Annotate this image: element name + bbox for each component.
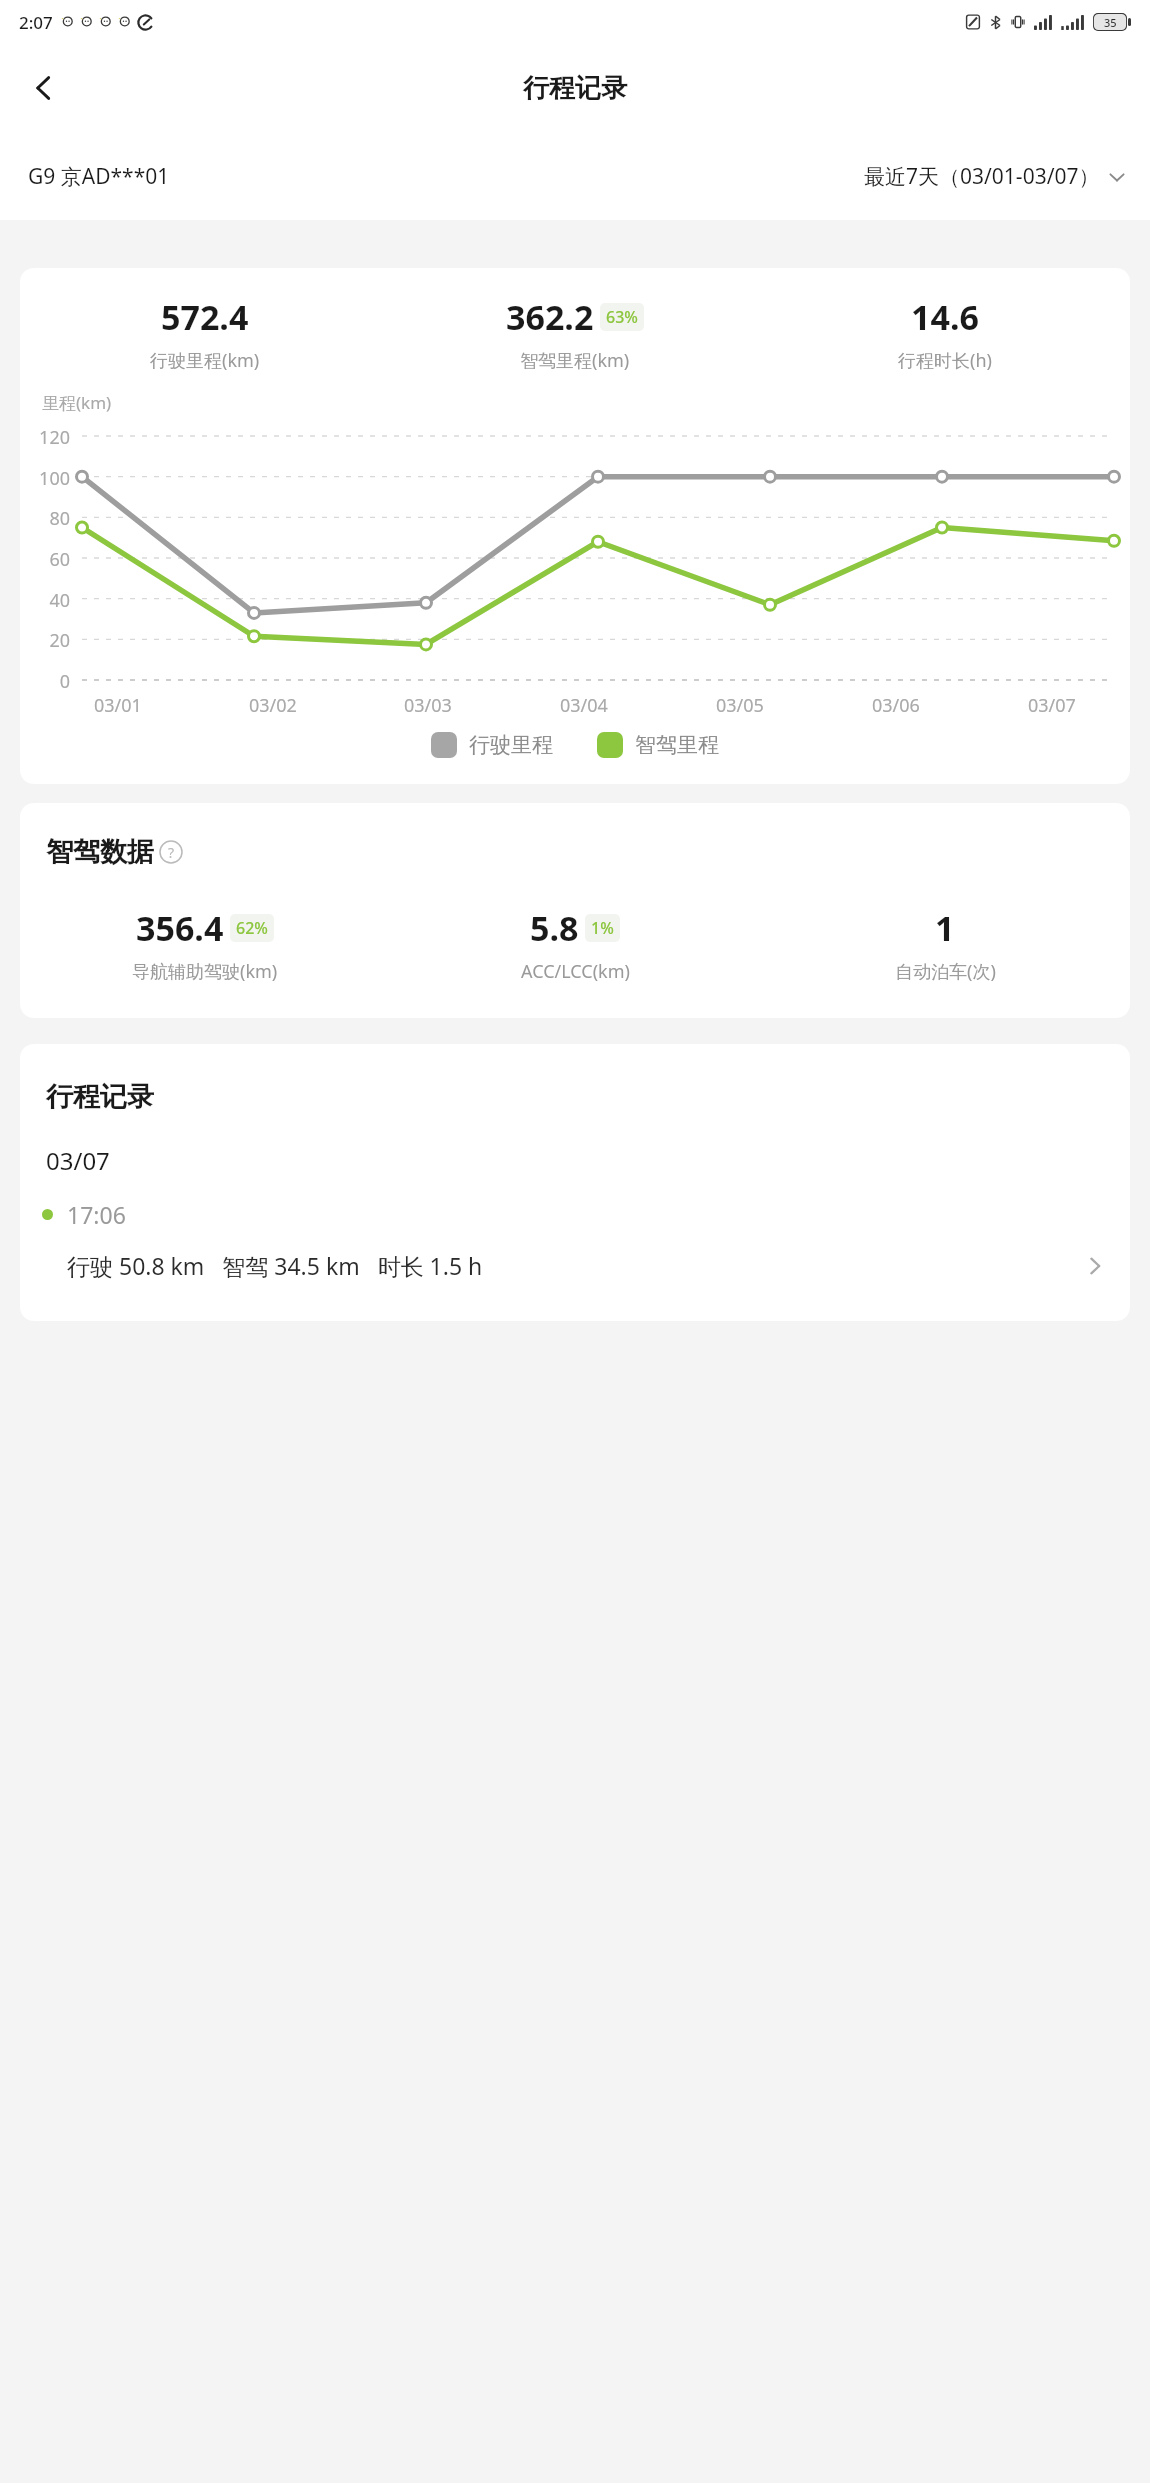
staticText: 行程记录 (523, 72, 627, 105)
staticText: 最近7天（03/01-03/07） (864, 162, 1100, 191)
staticText: 03/04 (560, 693, 608, 718)
staticText: 35 (1104, 15, 1117, 30)
staticText: 行驶里程(km) (150, 348, 260, 373)
staticText: 03/05 (716, 693, 764, 718)
staticText: 17:06 (67, 1199, 126, 1230)
staticText: 智驾数据 (46, 835, 154, 869)
staticText: 行程记录 (46, 1080, 154, 1114)
staticText: 362.2 (506, 294, 594, 340)
staticText: 572.4 (161, 294, 249, 340)
staticText: 03/03 (404, 693, 452, 718)
staticText: 里程(km) (42, 391, 112, 414)
staticText: ? (168, 843, 175, 862)
button[interactable]: 17:06 (20, 1199, 1130, 1281)
staticText: G9 京AD***01 (28, 162, 170, 191)
staticText: 智驾里程(km) (520, 348, 630, 373)
staticText: 行程时长(h) (898, 348, 992, 373)
staticText: 0 (20, 669, 70, 694)
staticText: 03/06 (872, 693, 920, 718)
staticText: 03/07 (46, 1144, 110, 1177)
staticText: 自动泊车(次) (895, 959, 996, 984)
staticText: 80 (20, 506, 70, 531)
staticText: 40 (20, 588, 70, 613)
staticText: ACC/LCC(km) (521, 959, 630, 984)
button[interactable]: 最近7天（03/01-03/07） (864, 156, 1128, 197)
button[interactable]: 行驶里程 (431, 732, 553, 758)
staticText: 03/01 (94, 693, 142, 718)
staticText: 1 (935, 905, 955, 951)
staticText: 60 (20, 547, 70, 572)
staticText: 2:07 (19, 11, 53, 34)
staticText: 62% (236, 917, 268, 939)
staticText: 智驾里程 (635, 732, 719, 758)
button[interactable]: 智驾里程 (597, 732, 719, 758)
staticText: 356.4 (136, 905, 224, 951)
staticText: 导航辅助驾驶(km) (132, 959, 278, 984)
button[interactable]: Back (10, 54, 78, 122)
staticText: 5.8 (530, 905, 579, 951)
staticText: 03/02 (249, 693, 297, 718)
staticText: 100 (20, 466, 70, 491)
button[interactable]: 帮助 (158, 839, 184, 865)
staticText: 1% (591, 917, 614, 939)
staticText: 行驶 50.8 km 智驾 34.5 km 时长 1.5 h (67, 1250, 483, 1281)
staticText: 20 (20, 628, 70, 653)
staticText: 63% (606, 306, 638, 328)
staticText: 14.6 (911, 294, 979, 340)
staticText: 03/07 (1028, 693, 1076, 718)
button[interactable]: G9 京AD***01 (28, 156, 170, 197)
staticText: 120 (20, 425, 70, 450)
staticText: 行驶里程 (469, 732, 553, 758)
